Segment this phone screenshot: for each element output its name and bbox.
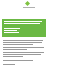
button[interactable] <box>2 19 46 37</box>
button[interactable]: Logo <box>22 1 36 9</box>
